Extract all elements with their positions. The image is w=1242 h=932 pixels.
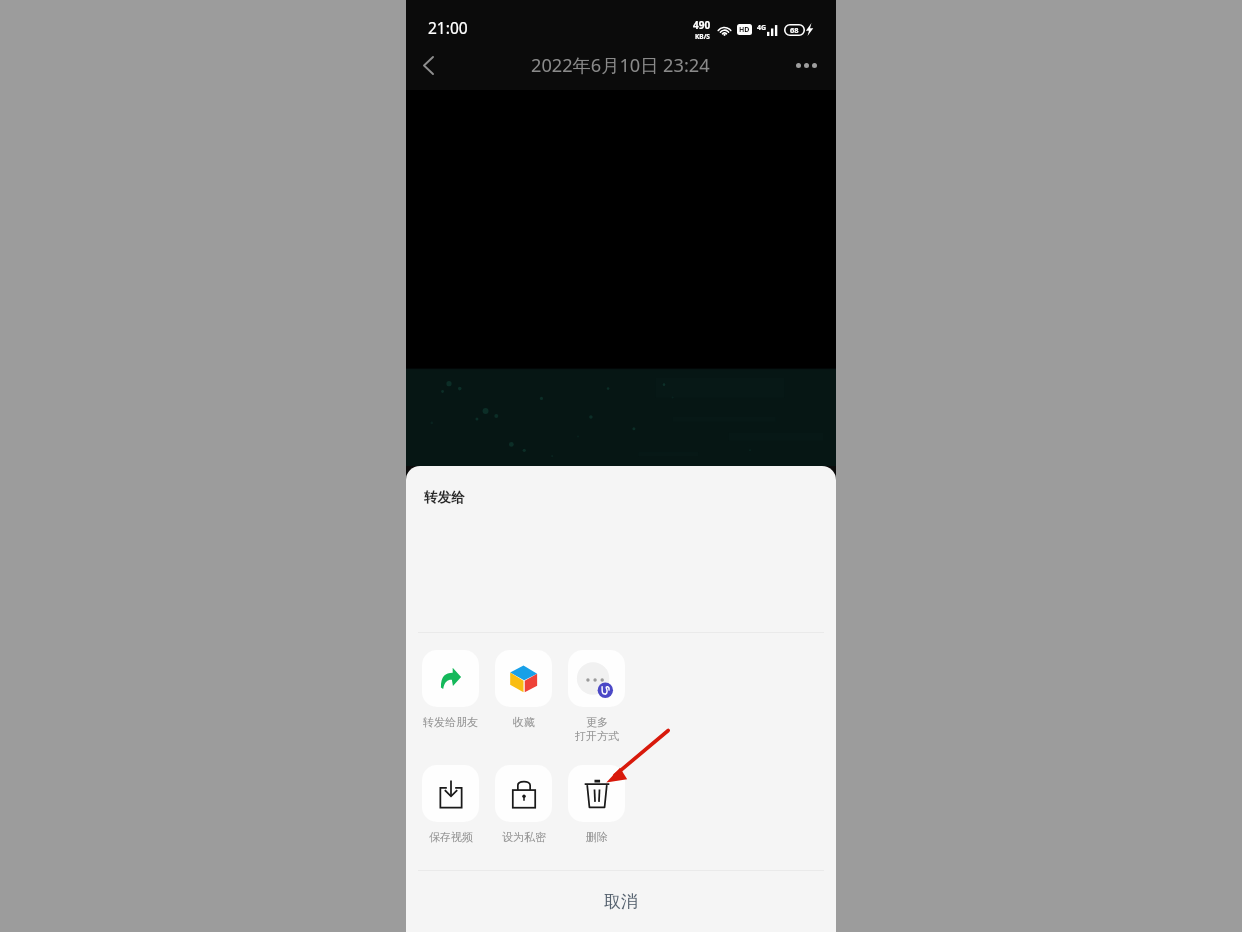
staticText: 更多	[586, 715, 608, 729]
staticText: 打开方式	[575, 729, 619, 743]
button[interactable]: Save video	[422, 765, 479, 844]
button[interactable]: Delete	[568, 765, 625, 844]
staticText: 删除	[586, 830, 608, 844]
staticText: 转发给朋友	[423, 715, 478, 729]
button[interactable]: 取消	[406, 871, 836, 932]
staticText: 490	[693, 18, 711, 32]
button[interactable]: Set private	[495, 765, 552, 844]
staticText: 收藏	[513, 715, 535, 729]
button[interactable]: More open options	[568, 650, 625, 743]
button[interactable]: Forward to friends	[422, 650, 479, 729]
button[interactable]: Favorite	[495, 650, 552, 729]
staticText: 2022年6月10日 23:24	[531, 53, 710, 78]
staticText: 21:00	[428, 17, 468, 38]
staticText: 设为私密	[502, 830, 546, 844]
button[interactable]: Back	[406, 43, 450, 87]
staticText: 取消	[604, 891, 638, 912]
staticText: HD	[739, 25, 750, 35]
staticText: 4G	[757, 23, 767, 33]
staticText: KB/S	[695, 32, 710, 41]
staticText: 转发给	[424, 489, 465, 506]
staticText: 保存视频	[429, 830, 473, 844]
button[interactable]: More options	[784, 43, 828, 87]
staticText: 68	[790, 25, 799, 35]
